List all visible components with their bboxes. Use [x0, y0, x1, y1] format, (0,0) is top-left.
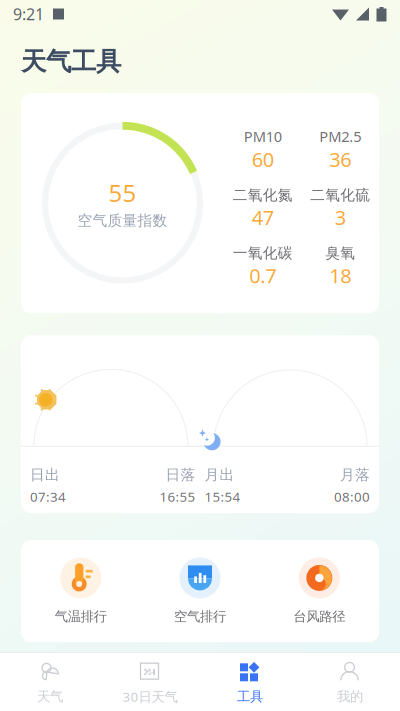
button[interactable]: 30日天气: [100, 653, 200, 711]
staticText: 工具: [237, 688, 263, 705]
button[interactable]: 空气排行: [140, 557, 260, 625]
staticText: 15:54: [204, 488, 240, 505]
staticText: 16:55: [159, 488, 195, 505]
staticText: 日落: [165, 466, 195, 484]
staticText: 08:00: [334, 488, 370, 505]
staticText: 我的: [337, 688, 363, 705]
staticText: 气温排行: [55, 608, 107, 625]
staticText: 9:21: [13, 3, 44, 25]
button[interactable]: 气温排行: [21, 557, 140, 625]
staticText: PM10: [244, 126, 282, 146]
staticText: 36: [329, 146, 351, 173]
staticText: 空气排行: [174, 608, 226, 625]
staticText: 55: [108, 177, 136, 209]
staticText: 二氧化硫: [310, 186, 370, 204]
staticText: 月出: [204, 466, 234, 484]
staticText: 天气工具: [21, 46, 121, 77]
staticText: 臭氧: [325, 244, 355, 262]
staticText: 18: [329, 262, 351, 289]
staticText: 47: [252, 204, 274, 231]
staticText: 07:34: [30, 488, 66, 505]
button[interactable]: 天气: [0, 653, 100, 711]
staticText: 台风路径: [293, 608, 345, 625]
staticText: 空气质量指数: [77, 211, 167, 229]
staticText: PM2.5: [319, 126, 361, 146]
button[interactable]: 我的: [300, 653, 400, 711]
staticText: 0.7: [249, 262, 276, 289]
staticText: 月落: [340, 466, 370, 484]
staticText: 日出: [30, 466, 60, 484]
staticText: 一氧化碳: [233, 244, 293, 262]
button[interactable]: 工具: [200, 653, 300, 711]
button[interactable]: 台风路径: [260, 557, 379, 625]
staticText: 二氧化氮: [233, 186, 293, 204]
staticText: 60: [252, 146, 274, 173]
staticText: 30日天气: [122, 688, 177, 705]
staticText: 3: [335, 204, 346, 231]
staticText: 天气: [37, 688, 63, 705]
